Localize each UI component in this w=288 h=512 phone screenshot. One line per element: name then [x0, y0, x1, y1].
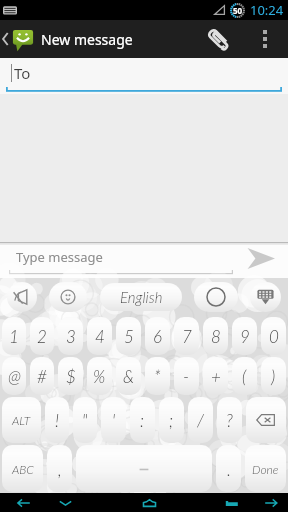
button[interactable]: ,: [47, 445, 72, 492]
button[interactable]: 6: [145, 317, 170, 355]
button[interactable]: ;: [159, 397, 184, 443]
button[interactable]: ?: [217, 397, 242, 443]
button[interactable]: Back: [3, 493, 43, 512]
button[interactable]: @: [2, 357, 26, 395]
staticText: /: [197, 410, 204, 430]
staticText: Type message: [16, 248, 103, 266]
button[interactable]: ABC: [2, 445, 43, 492]
button[interactable]: !: [45, 397, 69, 443]
button[interactable]: Voice input: [7, 282, 37, 312]
staticText: ): [271, 366, 276, 386]
staticText: New message: [41, 30, 133, 49]
staticText: Done: [252, 462, 279, 476]
button[interactable]: Forward: [254, 493, 288, 512]
button[interactable]: 4: [87, 317, 112, 355]
button[interactable]: More options: [242, 20, 288, 58]
button[interactable]: Space: [76, 445, 212, 492]
staticText: -: [183, 366, 190, 386]
staticText: 3: [66, 326, 76, 346]
staticText: :: [140, 410, 145, 430]
button[interactable]: Attach: [194, 20, 242, 58]
staticText: !: [55, 410, 60, 430]
button[interactable]: ": [73, 397, 97, 443]
button[interactable]: .: [216, 445, 241, 492]
staticText: 10:24: [250, 1, 284, 19]
button[interactable]: ALT: [2, 397, 41, 443]
staticText: ?: [226, 410, 233, 430]
button[interactable]: Send: [234, 242, 288, 278]
button[interactable]: Delete: [246, 397, 286, 443]
button[interactable]: English: [100, 283, 182, 311]
button[interactable]: &: [116, 357, 141, 395]
button[interactable]: $: [58, 357, 83, 395]
staticText: ;: [169, 410, 174, 430]
button[interactable]: Done: [245, 445, 286, 492]
button[interactable]: (: [232, 357, 257, 395]
staticText: 50: [233, 5, 243, 16]
staticText: 9: [240, 326, 250, 346]
staticText: ": [82, 410, 88, 430]
staticText: $: [66, 366, 76, 386]
staticText: To: [14, 63, 31, 83]
button[interactable]: Type message: [0, 242, 234, 278]
staticText: ALT: [12, 413, 31, 427]
button[interactable]: Emoji: [49, 282, 87, 312]
button[interactable]: Home: [127, 493, 171, 512]
button[interactable]: Recents: [208, 493, 254, 512]
button[interactable]: #: [30, 357, 54, 395]
button[interactable]: Hide keyboard: [250, 282, 281, 312]
staticText: .: [227, 459, 231, 479]
staticText: 4: [95, 326, 105, 346]
staticText: 7: [182, 326, 192, 346]
staticText: (: [242, 366, 247, 386]
staticText: 6: [153, 326, 163, 346]
button[interactable]: To: [11, 58, 288, 88]
button[interactable]: 3: [58, 317, 83, 355]
staticText: &: [123, 366, 134, 386]
button[interactable]: Navigate up: [0, 26, 36, 52]
button[interactable]: 0: [261, 317, 286, 355]
button[interactable]: *: [145, 357, 170, 395]
staticText: 5: [124, 326, 134, 346]
staticText: 1: [9, 326, 19, 346]
staticText: 0: [269, 326, 279, 346]
button[interactable]: :: [130, 397, 155, 443]
button[interactable]: 9: [232, 317, 257, 355]
staticText: ABC: [12, 462, 34, 476]
staticText: %: [93, 366, 106, 386]
staticText: +: [211, 366, 221, 386]
button[interactable]: 2: [30, 317, 54, 355]
button[interactable]: +: [203, 357, 228, 395]
staticText: ,: [58, 459, 62, 479]
button[interactable]: /: [188, 397, 213, 443]
button[interactable]: ): [261, 357, 286, 395]
button[interactable]: 8: [203, 317, 228, 355]
button[interactable]: %: [87, 357, 112, 395]
button[interactable]: -: [174, 357, 199, 395]
button[interactable]: ': [101, 397, 126, 443]
staticText: #: [37, 366, 47, 386]
button[interactable]: Hide keyboard: [43, 493, 87, 512]
button[interactable]: 7: [174, 317, 199, 355]
staticText: @: [8, 366, 21, 386]
staticText: *: [154, 366, 161, 386]
staticText: English: [120, 288, 163, 306]
staticText: 8: [211, 326, 221, 346]
button[interactable]: 1: [2, 317, 26, 355]
staticText: 2: [37, 326, 47, 346]
staticText: ': [112, 410, 116, 430]
button[interactable]: 5: [116, 317, 141, 355]
button[interactable]: Settings: [194, 282, 238, 312]
